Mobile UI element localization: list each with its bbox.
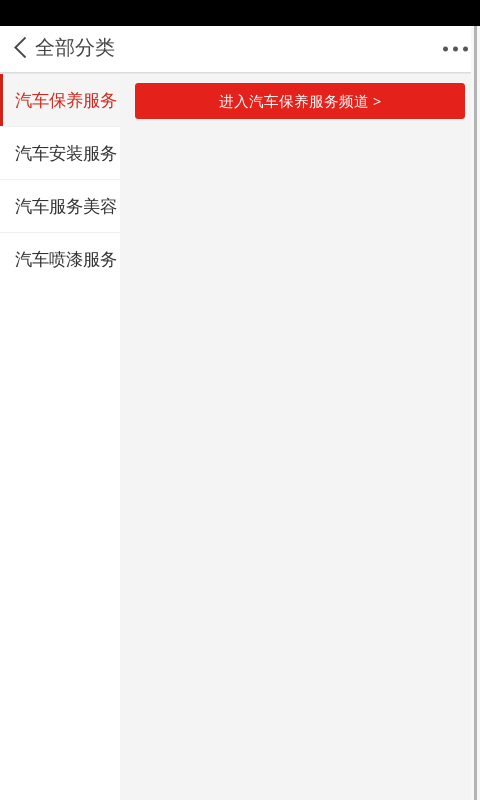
staticText: 汽车保养服务: [15, 90, 117, 111]
button[interactable]: More options: [443, 26, 480, 72]
staticText: 汽车安装服务: [15, 143, 117, 164]
staticText: 汽车喷漆服务: [15, 249, 117, 270]
staticText: 进入汽车保养服务频道 >: [219, 91, 381, 111]
button[interactable]: 汽车喷漆服务: [0, 233, 120, 286]
button[interactable]: 全部分类: [0, 26, 115, 72]
button[interactable]: 进入汽车保养服务频道 >: [135, 83, 465, 119]
staticText: 汽车服务美容: [15, 196, 117, 217]
staticText: 全部分类: [35, 35, 115, 60]
button[interactable]: 汽车服务美容: [0, 180, 120, 233]
button[interactable]: 汽车保养服务: [0, 74, 120, 127]
button[interactable]: 汽车安装服务: [0, 127, 120, 180]
